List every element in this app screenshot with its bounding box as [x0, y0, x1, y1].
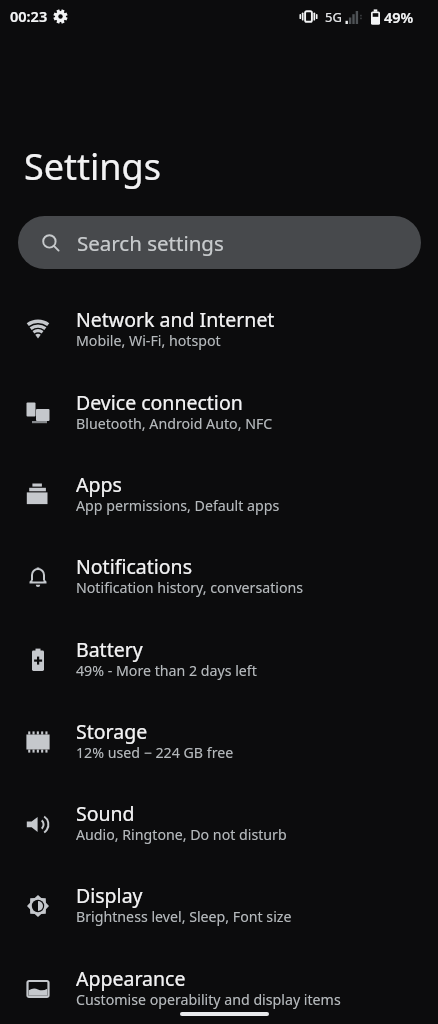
staticText: Device connection [76, 389, 243, 416]
staticText: Brightness level, Sleep, Font size [76, 907, 292, 926]
staticText: Display [76, 882, 143, 909]
staticText: Appearance [76, 965, 186, 992]
staticText: Settings [24, 142, 161, 191]
button[interactable]: Apps [0, 454, 438, 536]
staticText: Notifications [76, 553, 192, 580]
staticText: Mobile, Wi-Fi, hotspot [76, 331, 221, 350]
button[interactable]: Search settings [18, 216, 421, 269]
button[interactable]: Battery [0, 619, 438, 701]
staticText: Battery [76, 636, 143, 663]
staticText: Network and Internet [76, 306, 275, 333]
staticText: Apps [76, 471, 122, 498]
button[interactable]: Appearance [0, 948, 438, 1024]
button[interactable]: Notifications [0, 536, 438, 618]
button[interactable]: Sound [0, 783, 438, 865]
staticText: Sound [76, 800, 135, 827]
staticText: 49% [384, 7, 414, 27]
staticText: Storage [76, 718, 148, 745]
staticText: Search settings [77, 229, 224, 257]
button[interactable]: Network and Internet [0, 289, 438, 371]
staticText: 12% used − 224 GB free [76, 743, 234, 762]
staticText: 5G [325, 8, 342, 26]
staticText: App permissions, Default apps [76, 496, 280, 515]
staticText: Audio, Ringtone, Do not disturb [76, 825, 287, 844]
button[interactable]: Device connection [0, 372, 438, 454]
staticText: Notification history, conversations [76, 578, 304, 597]
button[interactable]: Display [0, 865, 438, 947]
button[interactable]: Storage [0, 701, 438, 783]
staticText: 49% - More than 2 days left [76, 661, 257, 680]
staticText: Bluetooth, Android Auto, NFC [76, 414, 273, 433]
staticText: 00:23 [10, 6, 48, 26]
staticText: Customise operability and display items [76, 990, 341, 1009]
